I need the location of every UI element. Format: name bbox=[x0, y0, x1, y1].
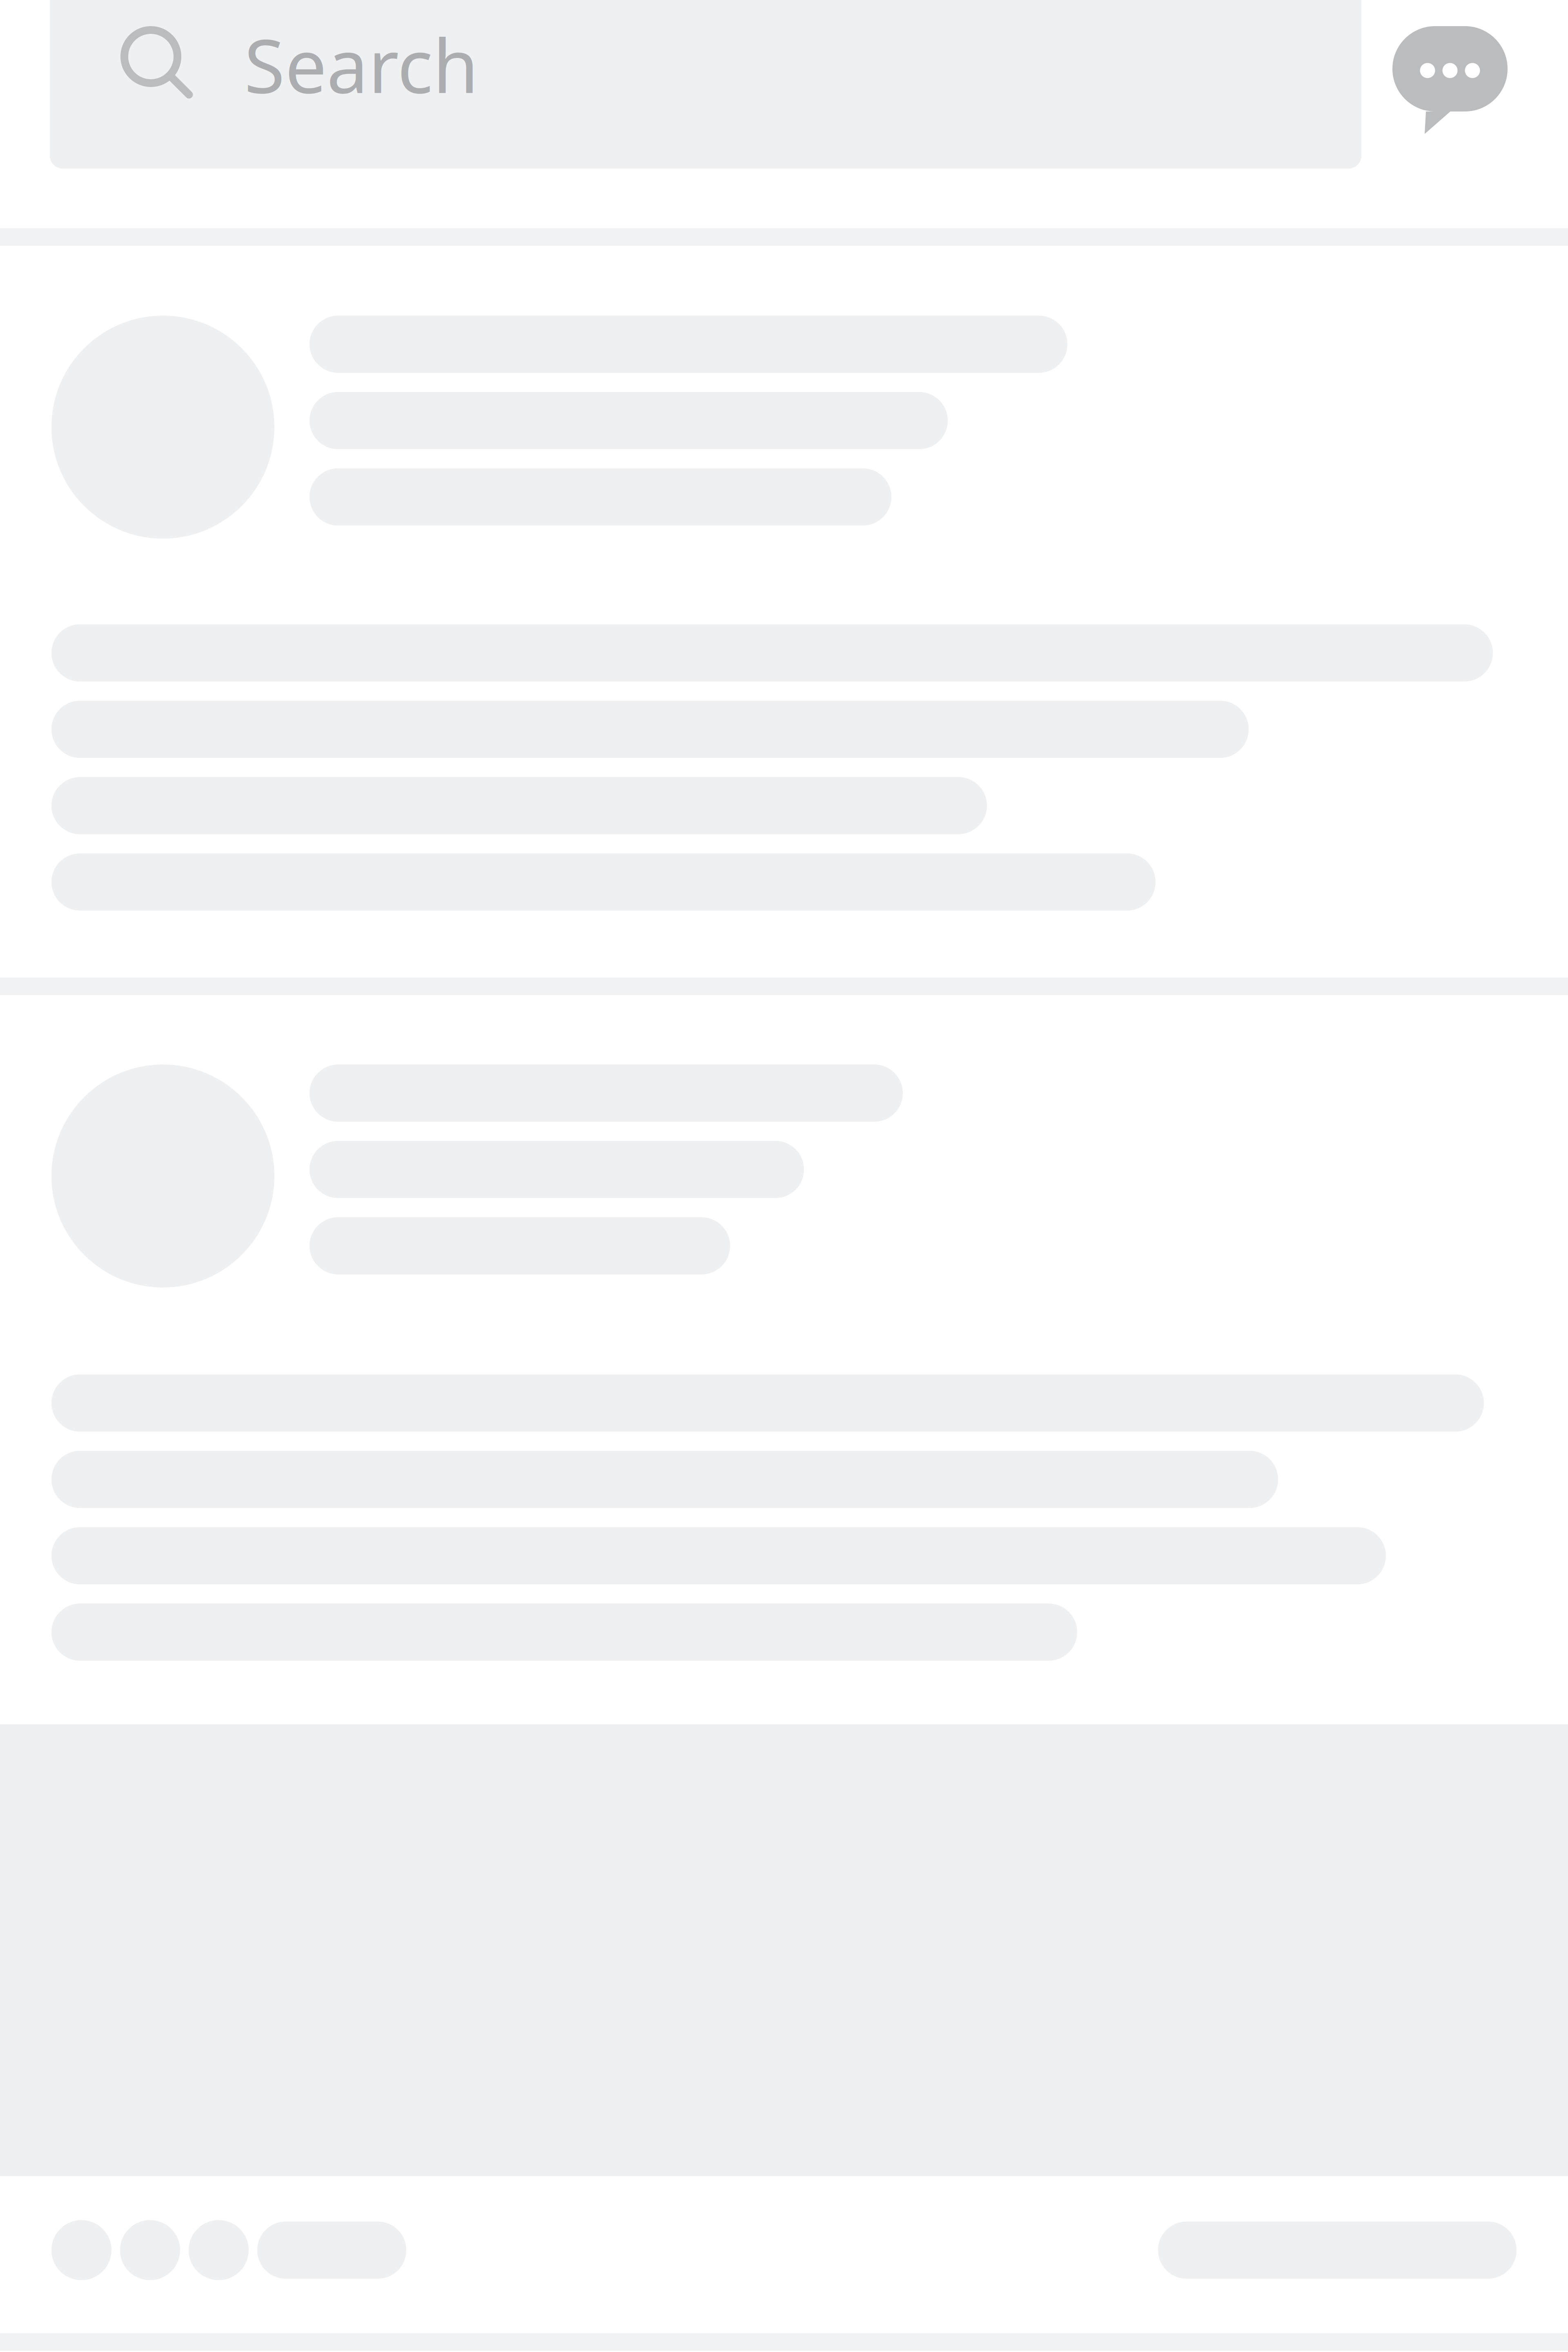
button[interactable]: Share bbox=[1158, 2222, 1517, 2279]
button[interactable]: Messages bbox=[1392, 26, 1508, 134]
button[interactable]: Reactions bbox=[51, 2220, 406, 2280]
button[interactable]: Post with photo, loading bbox=[0, 995, 1568, 2333]
button[interactable]: Search bbox=[50, 0, 1361, 169]
staticText: Search bbox=[244, 15, 479, 113]
button[interactable]: Post, loading bbox=[0, 246, 1568, 978]
